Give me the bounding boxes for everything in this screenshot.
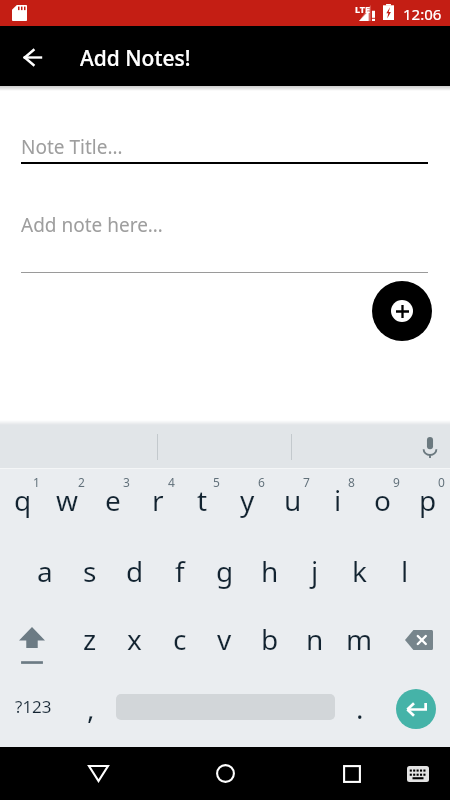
staticText: Note Title…	[21, 134, 123, 160]
button[interactable]: h	[247, 542, 292, 600]
staticText: Add note here…	[21, 212, 163, 238]
button[interactable]: c	[157, 610, 202, 668]
staticText: w	[56, 481, 79, 519]
button[interactable]: l	[382, 542, 427, 600]
button[interactable]: ,	[68, 679, 113, 734]
button[interactable]: 5	[180, 468, 225, 528]
button[interactable]: n	[292, 610, 337, 668]
staticText: 3	[123, 474, 130, 490]
staticText: 6	[258, 474, 265, 490]
button[interactable]: 1	[0, 468, 45, 528]
staticText: 0	[438, 474, 445, 490]
button[interactable]: Space	[116, 680, 335, 735]
staticText: g	[216, 552, 234, 590]
staticText: d	[126, 552, 144, 590]
staticText: 12:06	[403, 4, 442, 24]
staticText: 4	[168, 474, 175, 490]
staticText: i	[334, 481, 342, 519]
staticText: j	[311, 552, 319, 590]
staticText: LTE	[355, 3, 371, 15]
staticText: Add Notes!	[80, 44, 191, 73]
button[interactable]: 6	[225, 468, 270, 528]
staticText: ,	[87, 689, 95, 727]
staticText: e	[105, 481, 121, 519]
staticText: k	[352, 552, 367, 590]
staticText: f	[175, 552, 185, 590]
staticText: ?123	[15, 695, 52, 718]
button[interactable]: Shift	[9, 617, 54, 675]
staticText: a	[37, 552, 53, 590]
button[interactable]: 3	[90, 468, 135, 528]
staticText: u	[284, 481, 302, 519]
button[interactable]: a	[22, 542, 67, 600]
button[interactable]: 4	[135, 468, 180, 528]
staticText: s	[83, 552, 97, 590]
staticText: 2	[78, 474, 85, 490]
button[interactable]: z	[67, 610, 112, 668]
staticText: y	[240, 481, 255, 519]
button[interactable]: ?123	[11, 679, 56, 734]
button[interactable]: g	[202, 542, 247, 600]
button[interactable]: j	[292, 542, 337, 600]
staticText: c	[173, 620, 187, 658]
button[interactable]: Home	[197, 758, 253, 789]
button[interactable]: b	[247, 610, 292, 668]
button[interactable]: s	[67, 542, 112, 600]
button[interactable]: 9	[360, 468, 405, 528]
button[interactable]: Recent apps	[324, 758, 380, 789]
button[interactable]: Add note	[372, 281, 432, 341]
staticText: l	[401, 552, 409, 590]
button[interactable]: Enter	[396, 689, 436, 729]
button[interactable]: x	[112, 610, 157, 668]
staticText: r	[152, 481, 164, 519]
button[interactable]: m	[337, 610, 382, 668]
button[interactable]: k	[337, 542, 382, 600]
staticText: q	[14, 481, 32, 519]
button[interactable]: Backspace	[396, 611, 441, 669]
staticText: 8	[348, 474, 355, 490]
button[interactable]: Back	[70, 747, 450, 800]
button[interactable]: f	[157, 542, 202, 600]
staticText: .	[356, 689, 364, 727]
staticText: p	[419, 481, 437, 519]
staticText: 5	[213, 474, 220, 490]
button[interactable]: 8	[315, 468, 360, 528]
staticText: o	[374, 481, 391, 519]
button[interactable]: .	[337, 679, 382, 734]
button[interactable]: v	[202, 610, 247, 668]
button[interactable]: Back	[70, 758, 126, 789]
staticText: 9	[393, 474, 400, 490]
staticText: v	[217, 620, 232, 658]
staticText: n	[306, 620, 324, 658]
staticText: 7	[303, 474, 310, 490]
staticText: t	[197, 481, 208, 519]
staticText: z	[83, 620, 97, 658]
staticText: h	[261, 552, 279, 590]
button[interactable]: 0	[405, 468, 450, 528]
staticText: 1	[33, 474, 40, 490]
staticText: b	[261, 620, 279, 658]
button[interactable]: Back	[15, 40, 49, 74]
staticText: x	[127, 620, 142, 658]
button[interactable]: d	[112, 542, 157, 600]
staticText: m	[346, 620, 373, 658]
button[interactable]: Voice input	[414, 431, 446, 463]
button[interactable]: 7	[270, 468, 315, 528]
button[interactable]: Switch keyboard	[395, 758, 440, 789]
button[interactable]: 2	[45, 468, 90, 528]
